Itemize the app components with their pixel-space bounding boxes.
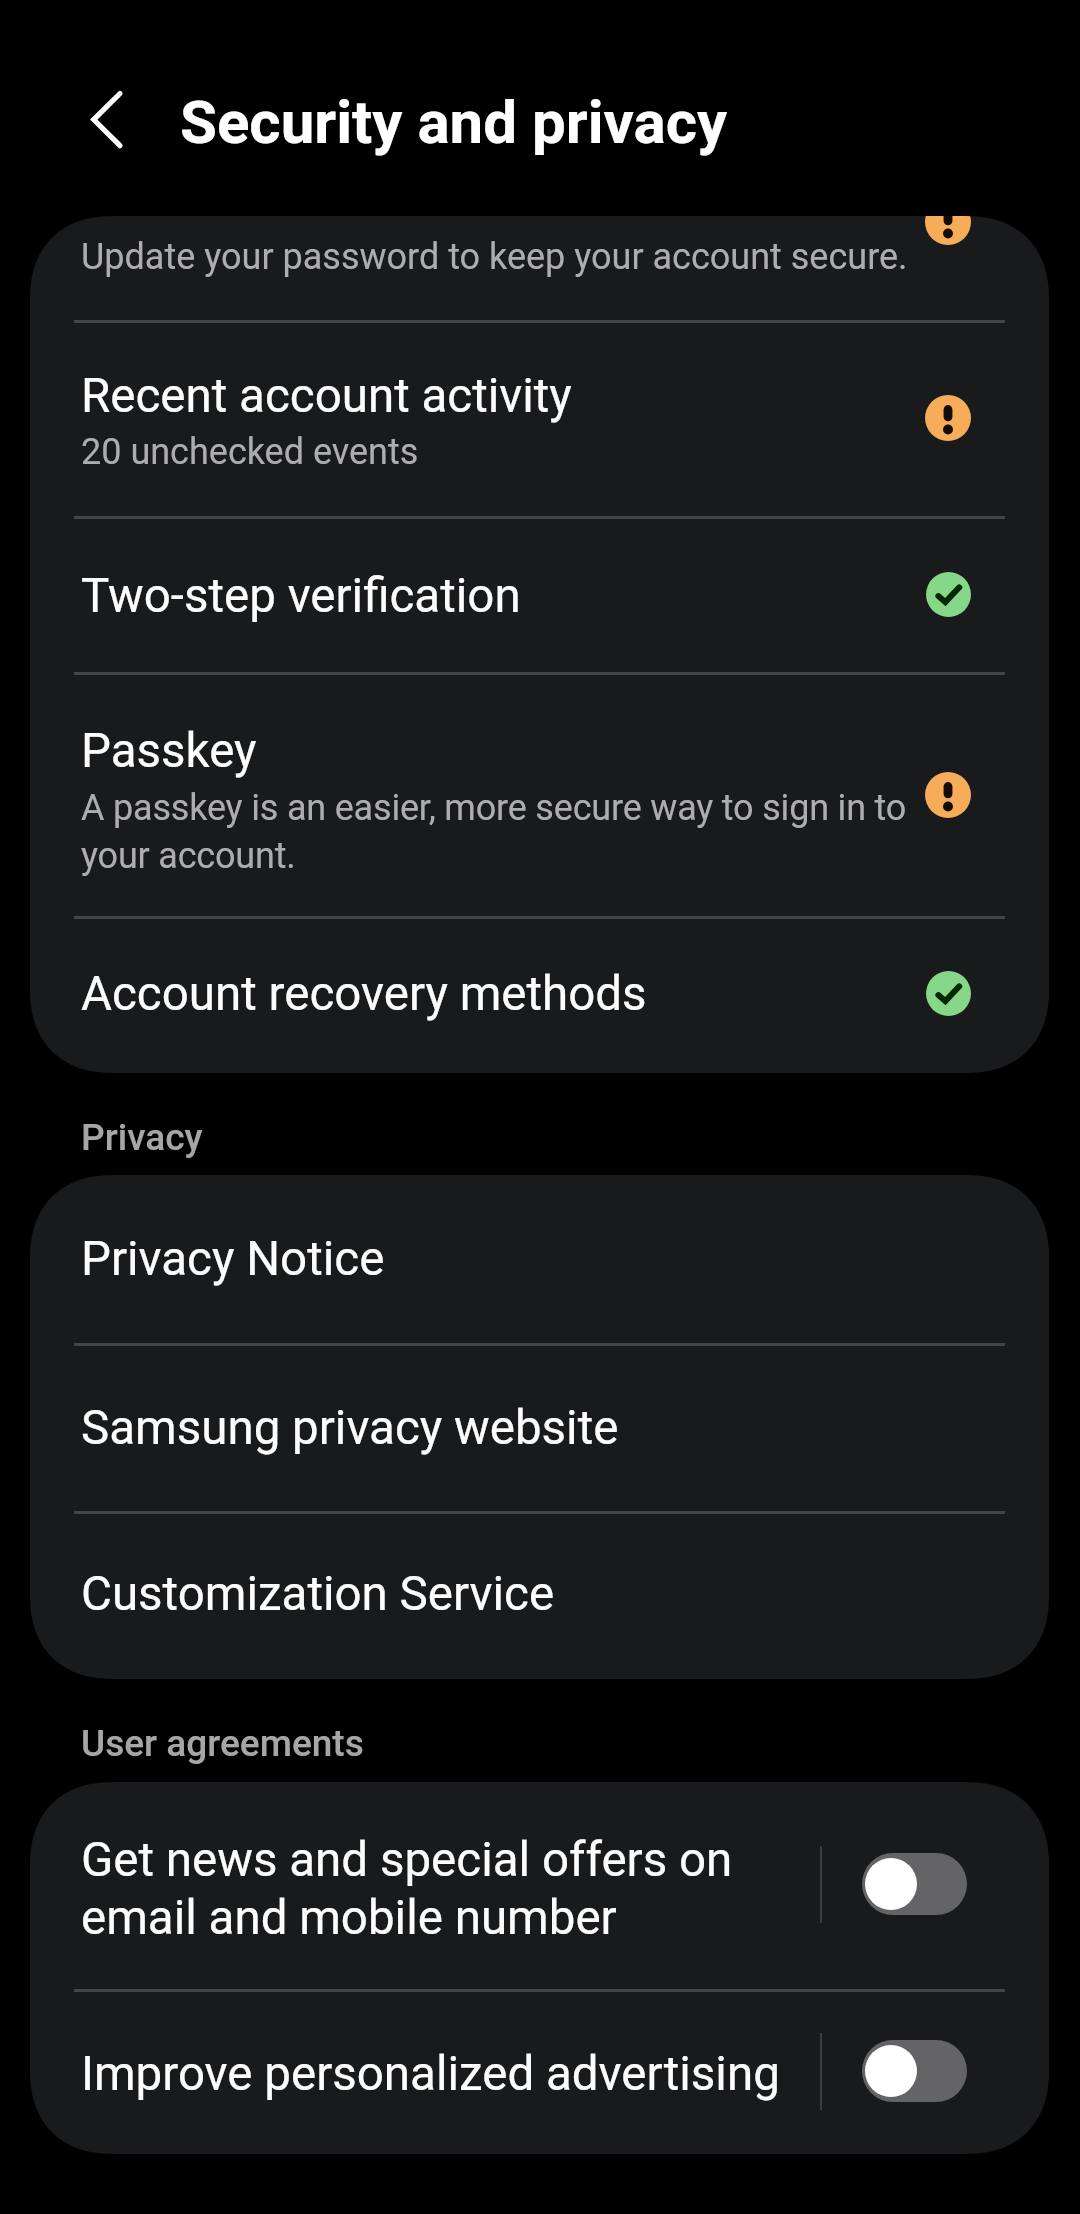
staticText: User agreements <box>81 1722 364 1765</box>
button[interactable] <box>30 1782 1049 1990</box>
staticText: Privacy Notice <box>81 1231 385 1287</box>
staticText: Privacy <box>81 1116 203 1159</box>
button[interactable] <box>30 918 1049 1074</box>
staticText: Improve personalized advertising <box>81 2046 780 2102</box>
button[interactable]: Get news and special offers on email and… <box>862 1853 967 1915</box>
staticText: Passkey <box>81 723 257 779</box>
staticText: Recent account activity <box>81 368 572 424</box>
button[interactable] <box>30 674 1049 918</box>
staticText: Security and privacy <box>180 87 728 157</box>
staticText: Get news and special offers on email and… <box>81 1832 761 1946</box>
staticText: 20 unchecked events <box>81 431 419 473</box>
staticText: Update your password to keep your accoun… <box>81 236 908 278</box>
staticText: A passkey is an easier, more secure way … <box>81 787 961 876</box>
button[interactable] <box>30 1512 1049 1679</box>
button[interactable]: Navigate up <box>57 72 153 168</box>
staticText: Two-step verification <box>81 568 521 624</box>
button[interactable] <box>30 1175 1049 1345</box>
button[interactable]: Update your password to keep your accoun… <box>30 216 1049 322</box>
button[interactable] <box>30 321 1049 517</box>
button[interactable] <box>30 517 1049 674</box>
staticText: Account recovery methods <box>81 966 647 1022</box>
button[interactable] <box>30 1345 1049 1513</box>
staticText: Customization Service <box>81 1566 555 1622</box>
staticText: Samsung privacy website <box>81 1400 619 1456</box>
button[interactable]: Improve personalized advertising <box>862 2040 967 2102</box>
button[interactable] <box>30 1990 1049 2154</box>
